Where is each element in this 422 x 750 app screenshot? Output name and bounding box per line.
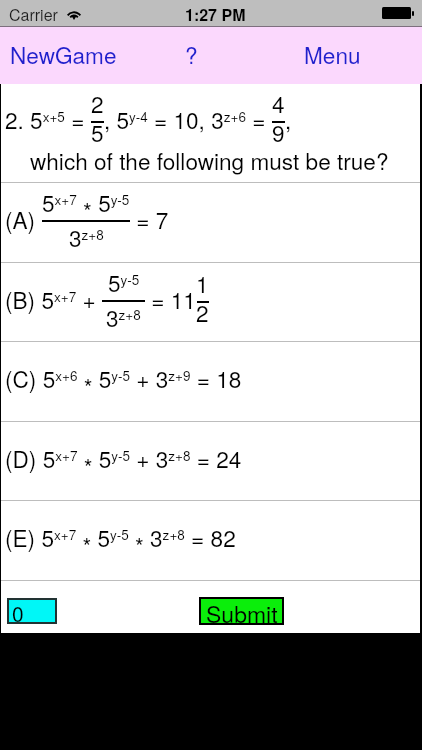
staticText: 2 bbox=[196, 296, 209, 328]
staticText: 1 bbox=[196, 267, 209, 299]
staticText: 5x+7 * 5y-5 bbox=[42, 186, 130, 226]
button[interactable]: Menu bbox=[293, 31, 372, 77]
staticText: (D) 5x+7 * 5y-5 + 3z+8 = 24 bbox=[5, 442, 242, 482]
staticText: = 7 bbox=[130, 203, 169, 235]
button[interactable]: Submit bbox=[199, 597, 284, 625]
staticText: 2. 5x+5 = bbox=[5, 103, 91, 135]
staticText: (B) 5x+7 + bbox=[5, 283, 102, 315]
button[interactable]: NewGame bbox=[0, 31, 128, 77]
staticText: ? bbox=[185, 38, 198, 70]
staticText: 0 bbox=[12, 598, 24, 624]
button[interactable]: 0 bbox=[7, 598, 57, 624]
button[interactable]: ? bbox=[173, 31, 210, 77]
staticText: 3z+8 bbox=[69, 221, 104, 253]
staticText: 5y-5 bbox=[108, 266, 140, 298]
staticText: Carrier bbox=[9, 3, 58, 26]
staticText: (C) 5x+6 * 5y-5 + 3z+9 = 18 bbox=[5, 362, 242, 402]
button[interactable]: (A) bbox=[0, 183, 422, 262]
other: Wi-Fi signal bbox=[66, 6, 82, 20]
staticText: 3z+8 bbox=[106, 301, 141, 333]
staticText: 2 bbox=[91, 87, 104, 119]
staticText: 9 bbox=[272, 116, 285, 148]
button[interactable]: (B) 5x+7 + bbox=[0, 263, 422, 341]
staticText: 5 bbox=[91, 116, 104, 148]
staticText: (E) 5x+7 * 5y-5 * 3z+8 = 82 bbox=[5, 521, 236, 561]
staticText: , bbox=[285, 103, 292, 135]
staticText: which of the following must be true? bbox=[30, 144, 389, 176]
other: Battery full bbox=[382, 7, 414, 19]
staticText: 1:27 PM bbox=[185, 3, 246, 26]
staticText: = 11 bbox=[145, 283, 196, 315]
staticText: 4 bbox=[272, 87, 285, 119]
staticText: (A) bbox=[5, 203, 42, 235]
staticText: Submit bbox=[206, 597, 278, 625]
button[interactable]: (E) 5x+7 * 5y-5 * 3z+8 = 82 bbox=[0, 501, 422, 580]
staticText: , 5y-4 = 10, 3z+6 = bbox=[104, 103, 272, 135]
staticText: NewGame bbox=[10, 38, 117, 70]
button[interactable]: (D) 5x+7 * 5y-5 + 3z+8 = 24 bbox=[0, 422, 422, 500]
staticText: Menu bbox=[304, 38, 361, 70]
button[interactable]: (C) 5x+6 * 5y-5 + 3z+9 = 18 bbox=[0, 342, 422, 421]
